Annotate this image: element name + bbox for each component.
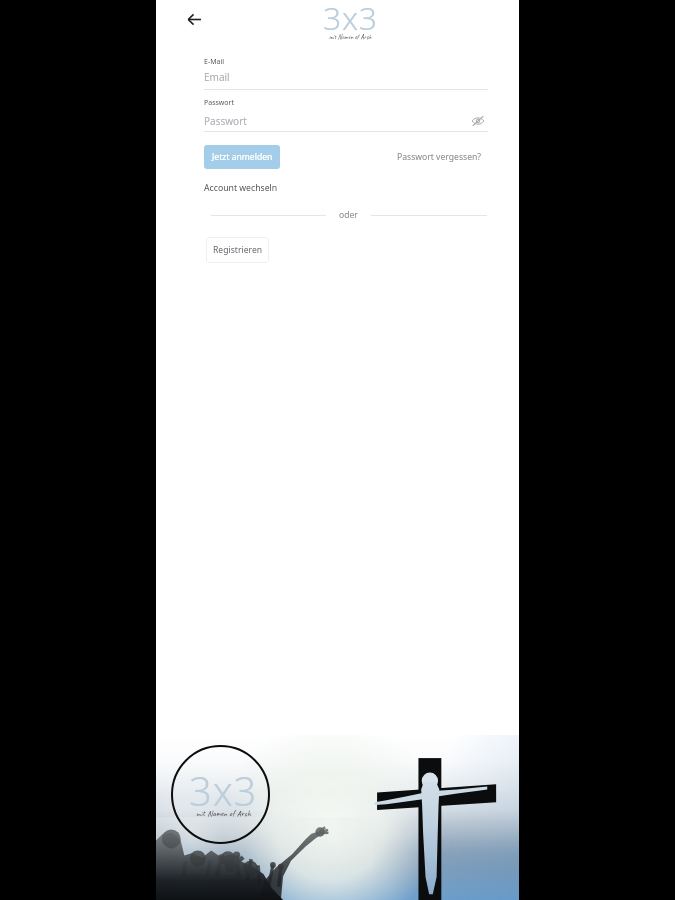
staticText: Account wechseln xyxy=(204,182,278,194)
staticText: Email xyxy=(204,70,230,84)
staticText: mit Namen of Arch xyxy=(196,808,251,819)
staticText: 3x3 xyxy=(189,763,258,817)
staticText: Passwort xyxy=(204,114,474,128)
button[interactable]: Registrieren xyxy=(206,237,269,263)
button[interactable]: Passwort vergessen? xyxy=(395,149,488,165)
button[interactable]: Show password xyxy=(471,114,485,128)
staticText: E-Mail xyxy=(204,57,225,67)
staticText: Registrieren xyxy=(213,244,263,256)
staticText: oder xyxy=(339,209,358,221)
staticText: 3x3 xyxy=(323,0,378,40)
button[interactable]: Jetzt anmelden xyxy=(204,145,280,169)
staticText: Passwort vergessen? xyxy=(397,151,482,163)
staticText: Passwort xyxy=(204,98,235,108)
button[interactable]: Back xyxy=(185,10,204,29)
staticText: Jetzt anmelden xyxy=(212,151,273,163)
button[interactable]: Account wechseln xyxy=(204,182,278,194)
staticText: mit Namen of Arch xyxy=(329,33,372,41)
